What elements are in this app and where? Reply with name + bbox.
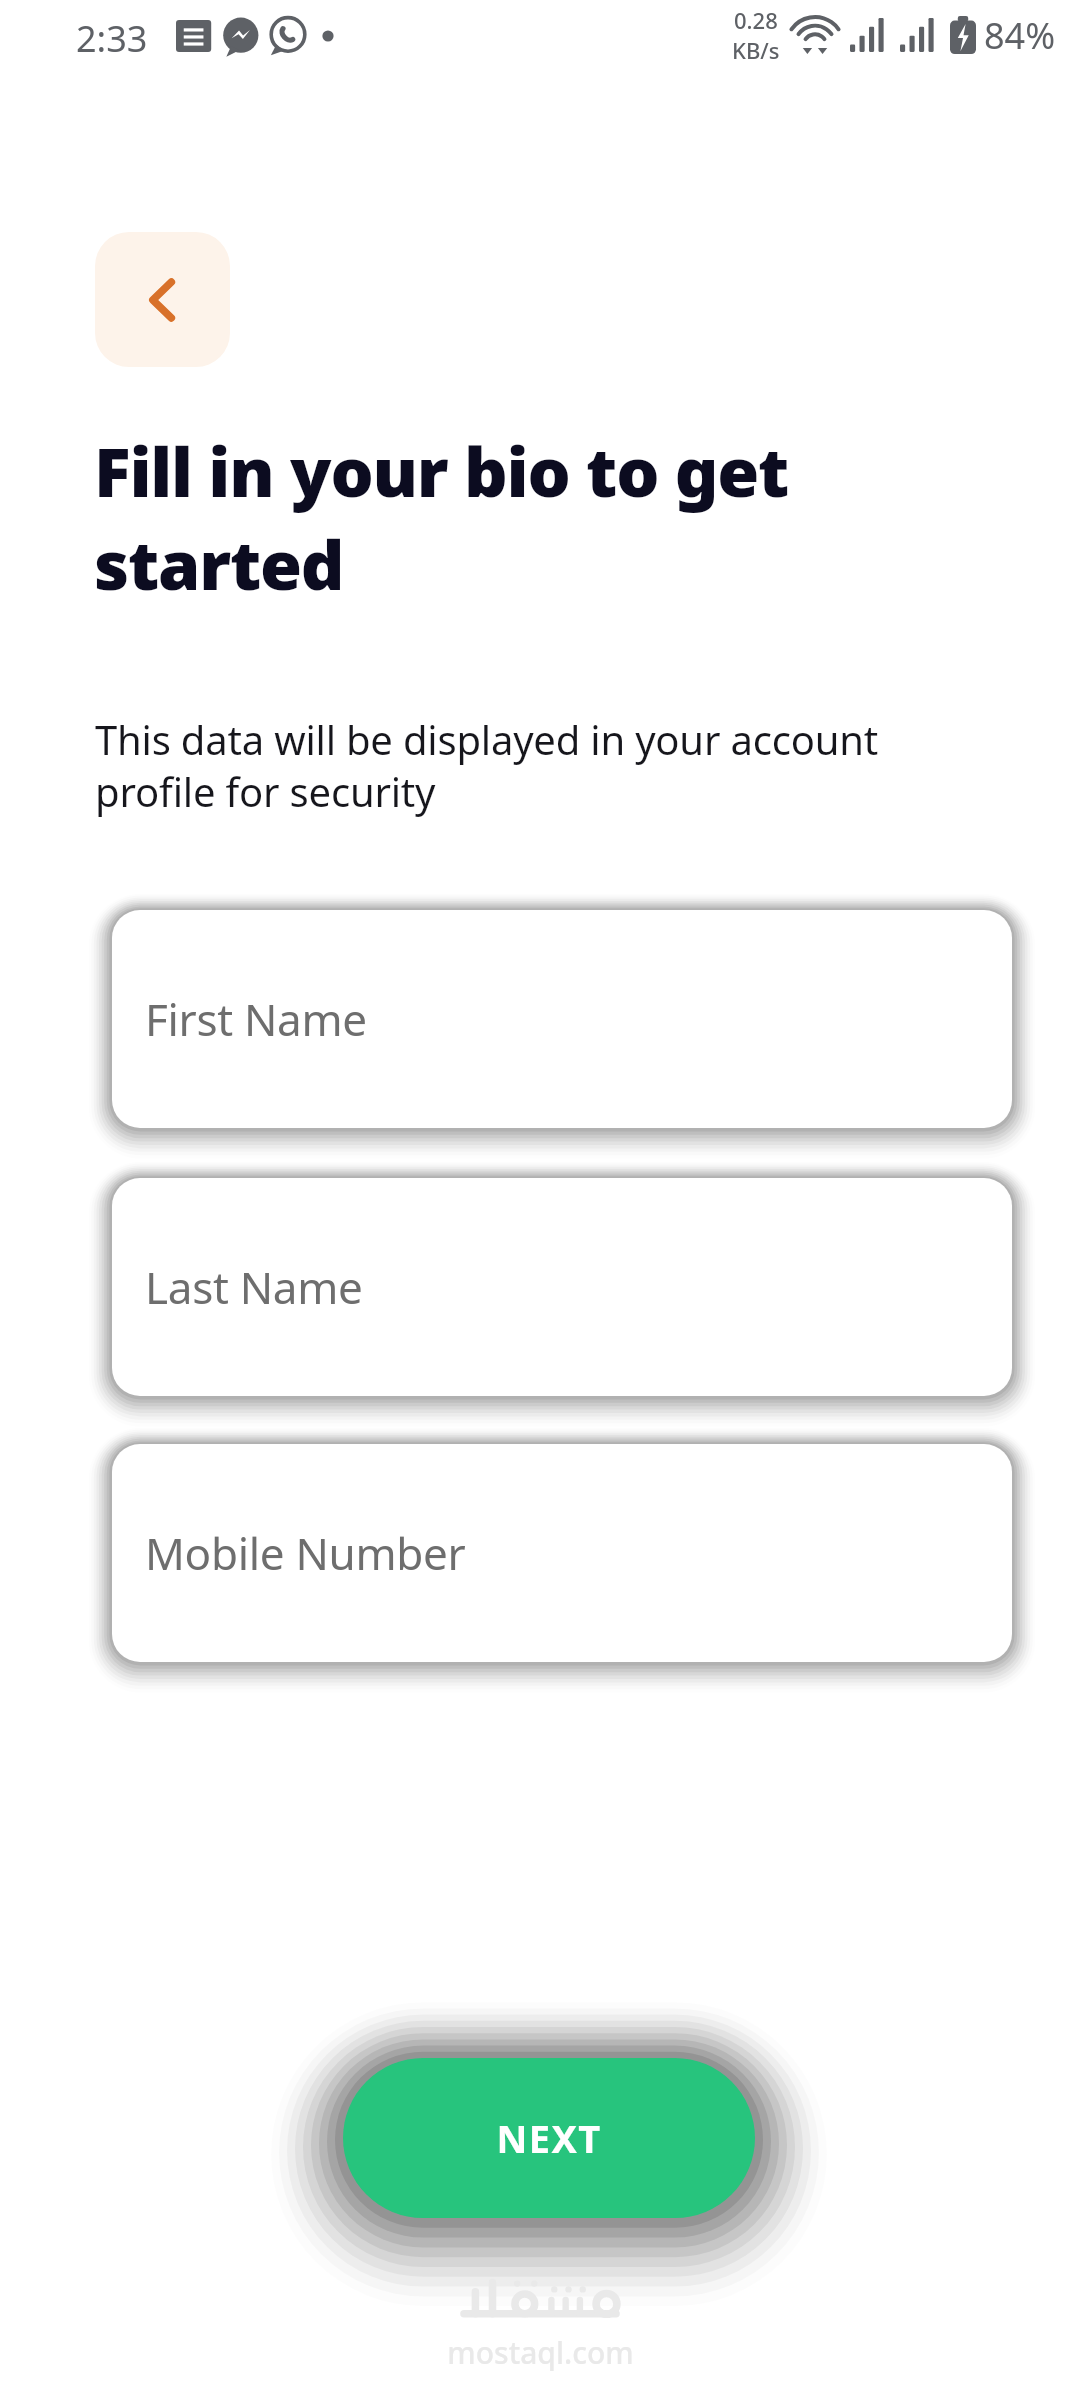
staticText: Mobile Number <box>145 1523 466 1583</box>
staticText: This data will be displayed in your acco… <box>95 712 985 819</box>
staticText: 2:33 <box>76 14 148 63</box>
button[interactable]: Mobile Number <box>112 1444 1012 1662</box>
button[interactable]: Back <box>95 232 230 367</box>
button[interactable]: Last Name <box>112 1178 1012 1396</box>
staticText: mostaql.com <box>447 2332 634 2373</box>
staticText: 0.28 <box>734 5 778 35</box>
staticText: KB/s <box>732 35 780 65</box>
staticText: Last Name <box>145 1257 363 1317</box>
button[interactable]: NEXT <box>343 2058 755 2218</box>
button[interactable]: First Name <box>112 910 1012 1128</box>
staticText: NEXT <box>496 2112 602 2164</box>
staticText: First Name <box>145 989 367 1049</box>
staticText: Fill in your bio to get started <box>94 424 974 610</box>
staticText: 84% <box>984 11 1056 60</box>
